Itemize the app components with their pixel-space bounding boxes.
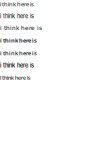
- staticText: i think here is: [0, 0, 34, 8]
- staticText: i think here is: [0, 49, 37, 57]
- staticText: i think here is: [0, 74, 30, 81]
- staticText: i think here is: [0, 25, 42, 31]
- staticText: i think here is: [0, 62, 34, 69]
- staticText: i think here is: [0, 36, 37, 44]
- staticText: i think here is: [0, 13, 34, 20]
